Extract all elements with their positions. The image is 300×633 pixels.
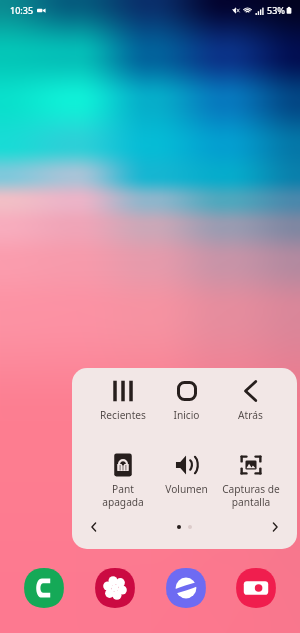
staticText: 53% — [267, 4, 285, 16]
button[interactable]: Previous page — [86, 519, 102, 535]
staticText: 10:35 — [10, 4, 34, 16]
button[interactable]: Phone — [20, 564, 68, 612]
staticText: Atrás — [238, 408, 263, 422]
button[interactable]: Atrás — [216, 379, 285, 422]
button[interactable]: Camera — [232, 564, 280, 612]
staticText: Pant apagada — [102, 482, 144, 509]
button[interactable]: Inicio — [152, 379, 221, 422]
button[interactable]: Internet — [162, 564, 210, 612]
staticText: Capturas de pantalla — [222, 482, 280, 509]
button[interactable]: Capturas de pantalla — [216, 453, 285, 509]
staticText: Recientes — [100, 408, 146, 422]
button[interactable]: Contacts — [91, 564, 139, 612]
button[interactable]: Volumen — [152, 453, 221, 496]
staticText: Volumen — [165, 482, 208, 496]
staticText: Inicio — [173, 408, 200, 422]
button[interactable]: Next page — [267, 519, 283, 535]
button[interactable]: Pant apagada — [88, 453, 157, 509]
button[interactable]: Recientes — [88, 379, 157, 422]
